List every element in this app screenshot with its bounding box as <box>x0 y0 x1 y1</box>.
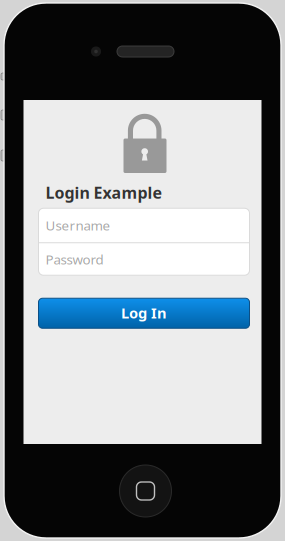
staticText: Log In <box>121 303 167 322</box>
staticText: Login Example <box>45 182 162 203</box>
button[interactable]: Username <box>38 208 249 242</box>
button[interactable]: Password <box>38 243 249 275</box>
button[interactable]: Home <box>119 465 171 517</box>
staticText: Password <box>45 250 103 268</box>
button[interactable]: Log In <box>38 298 249 328</box>
staticText: Username <box>45 216 110 234</box>
